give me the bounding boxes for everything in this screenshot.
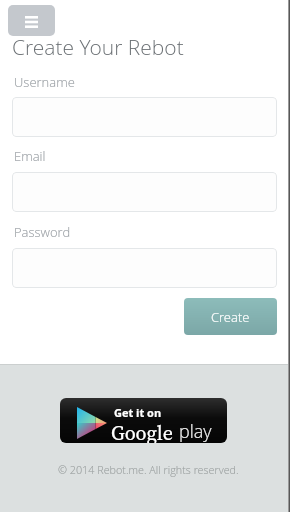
button[interactable]: Menu [8,5,55,36]
staticText: Username [14,73,75,91]
button[interactable] [12,172,277,212]
staticText: Get it on [114,405,162,420]
button[interactable] [12,248,277,288]
staticText: Create [211,308,250,326]
staticText: play [179,419,212,443]
button[interactable]: Get it on Google Play [60,398,227,443]
button[interactable]: Create [184,298,277,335]
button[interactable] [12,97,277,137]
staticText: Google [111,419,173,443]
staticText: Create Your Rebot [12,33,184,62]
staticText: © 2014 Rebot.me. All rights reserved. [58,462,239,477]
staticText: Email [14,147,46,165]
staticText: Password [14,223,71,241]
